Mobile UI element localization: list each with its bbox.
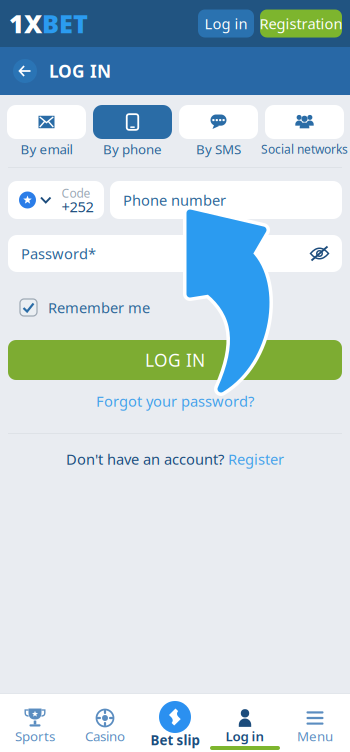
staticText: By SMS	[196, 140, 241, 158]
staticText: Bet slip	[150, 731, 199, 749]
button[interactable]: Phone number	[110, 181, 342, 219]
staticText: BET	[42, 7, 88, 40]
button[interactable]: Social networks	[265, 105, 344, 159]
button[interactable]: Sports	[0, 707, 70, 743]
button[interactable]: Log in	[210, 707, 280, 743]
button[interactable]: Password*	[8, 235, 342, 272]
button[interactable]: By email	[7, 105, 86, 159]
staticText: LOG IN	[49, 59, 111, 82]
staticText: Don't have an account?	[66, 449, 228, 469]
staticText: Log in	[225, 727, 264, 745]
staticText: Code	[61, 185, 90, 201]
staticText: By phone	[103, 140, 162, 158]
staticText: Social networks	[261, 141, 348, 157]
button[interactable]: Log in	[198, 9, 254, 37]
button[interactable]: Bet slip	[140, 701, 210, 747]
button[interactable]: Remember me	[20, 299, 220, 316]
staticText: Forgot your password?	[96, 391, 254, 411]
staticText: +252	[61, 197, 93, 216]
button[interactable]: Back	[9, 55, 41, 87]
button[interactable]: Registration	[260, 9, 342, 37]
button[interactable]: By SMS	[179, 105, 258, 159]
staticText: Phone number	[123, 190, 226, 210]
button[interactable]: Forgot your password?	[96, 392, 254, 410]
staticText: Register	[228, 449, 284, 469]
staticText: LOG IN	[145, 348, 205, 371]
button[interactable]: By phone	[93, 105, 172, 159]
button[interactable]: Menu	[280, 707, 350, 743]
staticText: Casino	[85, 727, 125, 745]
staticText: Log in	[204, 14, 247, 33]
staticText: Password*	[21, 244, 96, 263]
staticText: Remember me	[48, 298, 150, 317]
button[interactable]: Code	[8, 181, 104, 219]
staticText: By email	[20, 140, 72, 158]
staticText: Registration	[259, 14, 342, 33]
staticText: Menu	[297, 727, 333, 745]
button[interactable]: Register	[228, 449, 284, 469]
button[interactable]: LOG IN	[8, 340, 342, 380]
staticText: Sports	[15, 727, 55, 745]
staticText: 1X	[9, 7, 42, 40]
button[interactable]: Casino	[70, 707, 140, 743]
